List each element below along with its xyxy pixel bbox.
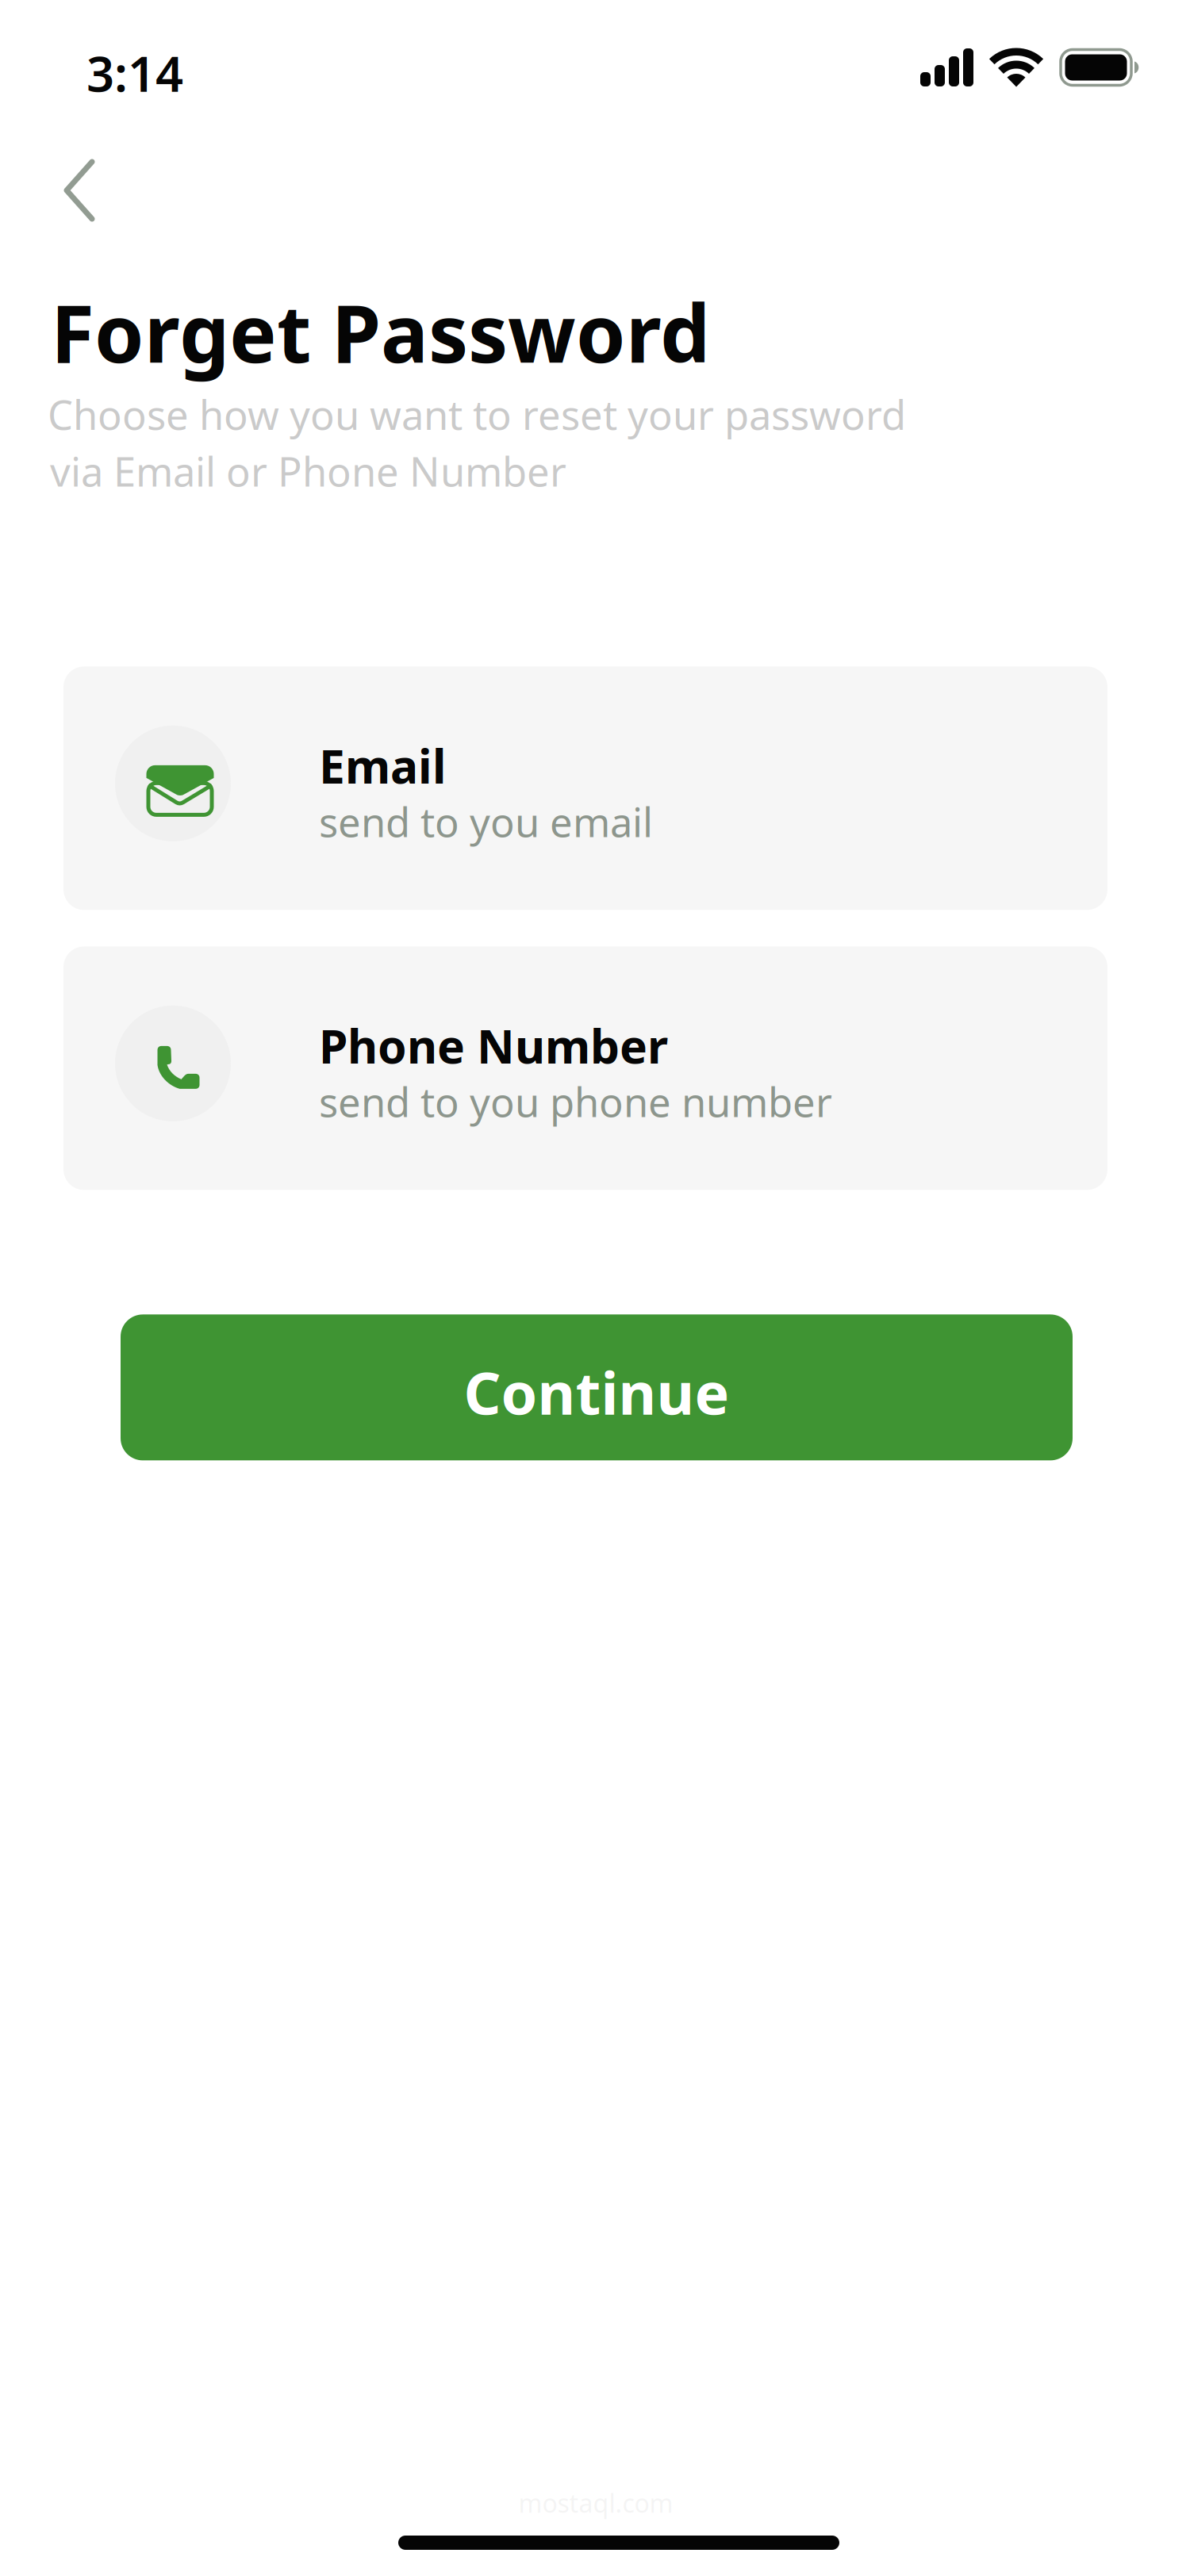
staticText: via Email or Phone Number (50, 444, 566, 498)
staticText: Continue (464, 1354, 729, 1431)
staticText: 3:14 (86, 41, 183, 105)
button[interactable]: Phone Number (63, 946, 1107, 1190)
staticText: send to you phone number (319, 1075, 832, 1128)
staticText: mostaql.com (518, 2486, 673, 2520)
button[interactable]: Back (51, 145, 108, 236)
staticText: Choose how you want to reset your passwo… (48, 388, 906, 441)
staticText: Forget Password (51, 279, 710, 384)
button[interactable]: Email (63, 667, 1107, 910)
button[interactable]: Continue (121, 1314, 1073, 1460)
staticText: Phone Number (319, 1015, 668, 1076)
staticText: Email (319, 735, 446, 796)
staticText: send to you email (319, 795, 653, 848)
